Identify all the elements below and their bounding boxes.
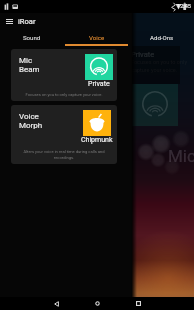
staticText: Private [131, 50, 155, 59]
staticText: Voice [89, 34, 105, 41]
button[interactable]: Open navigation drawer [0, 13, 18, 30]
staticText: Mic [168, 146, 194, 166]
button[interactable]: Recent apps [123, 297, 153, 310]
staticText: Mic [19, 56, 33, 65]
button[interactable]: Add-Ons [129, 30, 194, 46]
button[interactable]: Voice [11, 105, 117, 164]
staticText: iRoar [18, 17, 36, 26]
button[interactable]: Home [82, 297, 112, 310]
button[interactable]: Back [41, 297, 71, 310]
staticText: Sound [23, 34, 41, 41]
staticText: Private [88, 80, 110, 88]
staticText: Focuses on you to only capture your voic… [131, 59, 187, 73]
staticText: Add-Ons [150, 34, 174, 41]
staticText: Morph [19, 121, 43, 130]
button[interactable]: Mic [11, 49, 117, 101]
staticText: Alters your voice in real time during ca… [22, 149, 106, 160]
button[interactable]: Voice [64, 30, 129, 46]
staticText: Chipmunk [81, 136, 113, 144]
staticText: Voice [19, 112, 39, 121]
button[interactable]: Sound [0, 30, 64, 46]
staticText: Beam [19, 65, 40, 74]
staticText: Focuses on you to only capture your voic… [22, 92, 106, 97]
staticText: 12:45 [177, 3, 191, 10]
